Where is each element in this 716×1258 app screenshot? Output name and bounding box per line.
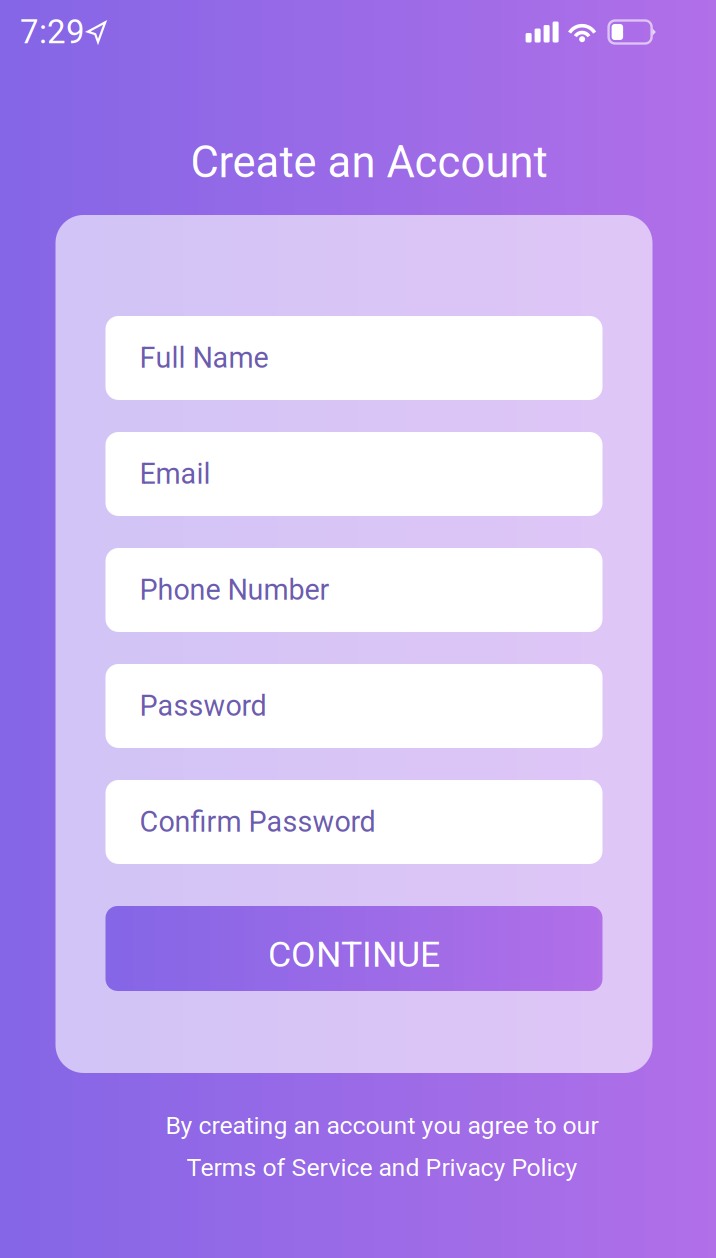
button[interactable]: Confirm Password	[105, 780, 602, 864]
staticText: Confirm Password	[139, 805, 375, 839]
button[interactable]: By creating an account you agree to our	[165, 1111, 598, 1182]
staticText: Phone Number	[139, 573, 329, 607]
button[interactable]: Phone Number	[105, 548, 602, 632]
button[interactable]: CONTINUE	[105, 906, 602, 991]
button[interactable]: Full Name	[105, 316, 602, 400]
button[interactable]: Email	[105, 432, 602, 516]
staticText: Terms of Service and Privacy Policy	[186, 1153, 577, 1182]
staticText: CONTINUE	[268, 934, 440, 975]
staticText: By creating an account you agree to our	[165, 1111, 598, 1140]
staticText: Email	[139, 457, 210, 491]
staticText: Create an Account	[190, 137, 547, 188]
button[interactable]: Password	[105, 664, 602, 748]
staticText: Password	[139, 689, 266, 723]
staticText: 7:29	[20, 13, 85, 51]
staticText: Full Name	[139, 341, 268, 375]
